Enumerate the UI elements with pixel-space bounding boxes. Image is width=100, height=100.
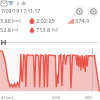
staticText: 500 [85,95,92,100]
button[interactable]: 374.9 [68,17,100,24]
staticText: [km] [12,18,21,23]
staticText: 52.8 [0,26,11,33]
button[interactable]: 3.88 [0,17,29,24]
button[interactable]: 52.8 [0,26,29,33]
staticText: 7/09/19 17:11:17 [1,8,41,15]
staticText: 374.9 [75,17,90,24]
staticText: 2:00 [52,95,60,100]
button[interactable]: Settings [88,7,98,16]
button[interactable]: Refresh [74,7,84,16]
button[interactable]: 2:02:25 [29,17,68,24]
staticText: [kJ] [52,27,58,32]
staticText: 3.88 [0,17,11,24]
staticText: 713.8 [36,26,51,33]
staticText: [m] [12,27,19,32]
staticText: 2:02:25 [36,17,55,24]
staticText: 4 [km] [1,95,13,100]
button[interactable]: 713.8 [29,26,68,33]
staticText: f [17,0,19,7]
button[interactable]: Time slider [0,40,100,45]
